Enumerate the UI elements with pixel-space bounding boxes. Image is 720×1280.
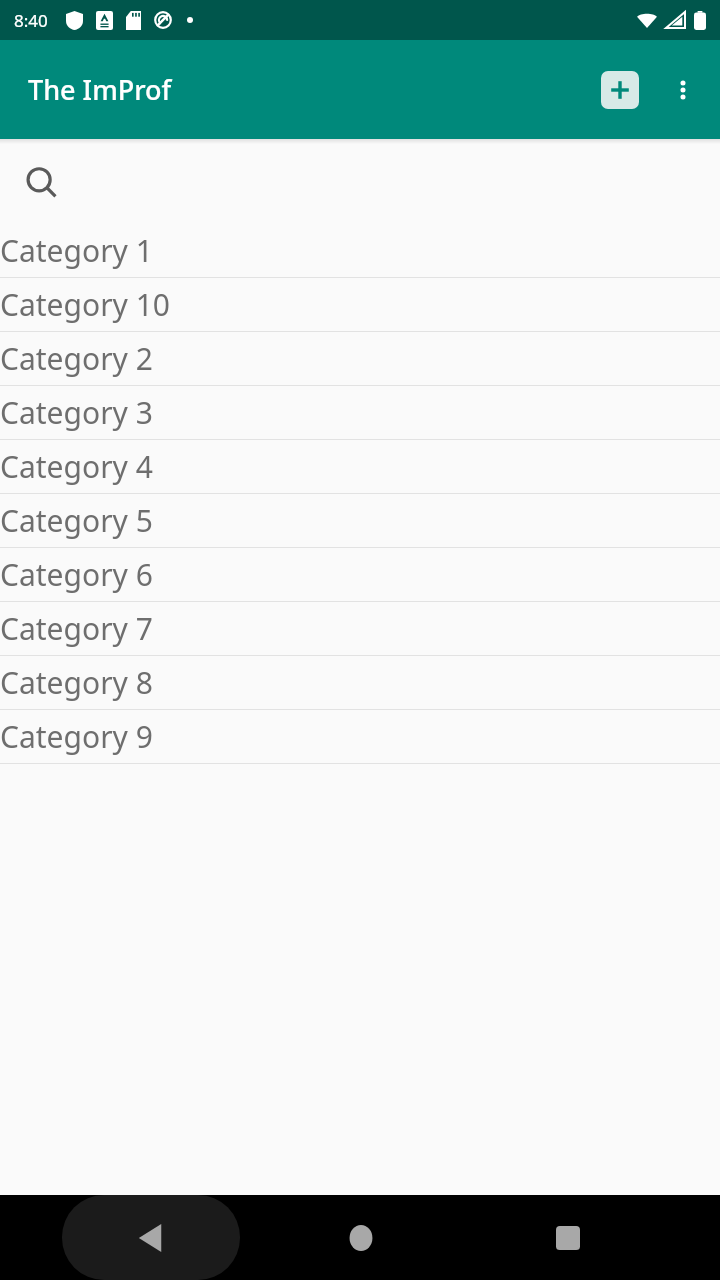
staticText: Category 1 [0,230,153,271]
button[interactable]: Category 8 [0,656,720,710]
button[interactable]: Add category [592,62,648,118]
button[interactable]: Category 4 [0,440,720,494]
button[interactable]: Category 6 [0,548,720,602]
button[interactable]: Category 2 [0,332,720,386]
button[interactable]: Category 9 [0,710,720,764]
button[interactable]: Category 7 [0,602,720,656]
button[interactable]: Category 3 [0,386,720,440]
button[interactable]: Recent apps [525,1195,610,1280]
staticText: The ImProf [28,71,172,108]
staticText: Category 6 [0,554,153,595]
button[interactable]: Search [0,144,720,224]
button[interactable]: Category 10 [0,278,720,332]
button[interactable]: Back [62,1195,240,1280]
other: Search [26,167,58,199]
staticText: Category 10 [0,284,170,325]
button[interactable]: Category 1 [0,224,720,278]
button[interactable]: Home [318,1195,403,1280]
staticText: Category 7 [0,608,153,649]
staticText: 8:40 [14,9,48,32]
staticText: Category 5 [0,500,153,541]
staticText: Category 4 [0,446,153,487]
staticText: Category 9 [0,716,153,757]
button[interactable]: More options [656,63,710,117]
staticText: Category 8 [0,662,153,703]
staticText: Category 3 [0,392,153,433]
button[interactable]: Category 5 [0,494,720,548]
staticText: Category 2 [0,338,153,379]
